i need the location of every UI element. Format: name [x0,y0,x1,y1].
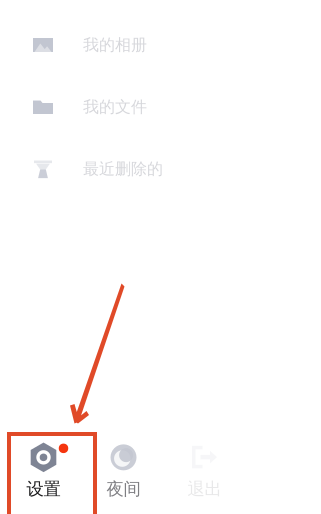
staticText: 我的文件 [83,97,147,117]
staticText: 设置 [26,478,60,500]
button[interactable]: 我的相册 [0,14,321,76]
staticText: 退出 [187,478,221,500]
button[interactable]: 我的文件 [0,76,321,138]
staticText: 我的相册 [83,35,147,55]
button[interactable]: 退出 [167,442,241,500]
staticText: 最近删除的 [83,159,163,179]
button[interactable]: 夜间 [86,442,160,500]
button[interactable]: 最近删除的 [0,138,321,200]
button[interactable]: 设置 [6,442,80,500]
staticText: 夜间 [106,478,140,500]
